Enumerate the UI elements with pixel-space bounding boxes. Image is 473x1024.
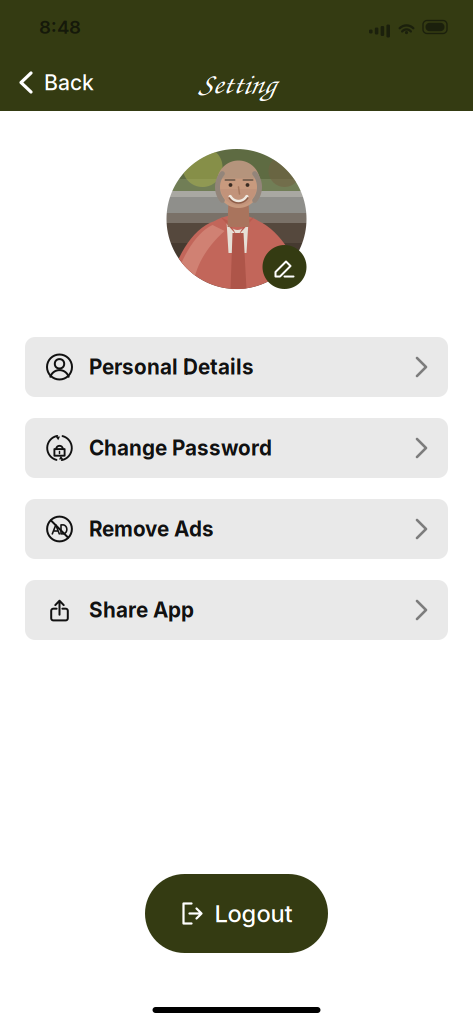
- staticText: Back: [44, 70, 94, 95]
- staticText: Share App: [89, 597, 194, 622]
- button[interactable]: Change Password: [25, 418, 448, 478]
- button[interactable]: Personal Details: [25, 337, 448, 397]
- button[interactable]: Remove Ads: [25, 499, 448, 559]
- button[interactable]: Edit profile photo: [262, 245, 306, 289]
- staticText: Change Password: [89, 435, 272, 460]
- staticText: 8:48: [39, 16, 81, 38]
- staticText: Logout: [214, 899, 292, 928]
- button[interactable]: Share App: [25, 580, 448, 640]
- button[interactable]: Logout: [145, 874, 328, 953]
- staticText: Setting: [198, 63, 275, 102]
- staticText: Remove Ads: [89, 516, 214, 541]
- staticText: Personal Details: [89, 354, 254, 379]
- button[interactable]: Back: [0, 58, 108, 106]
